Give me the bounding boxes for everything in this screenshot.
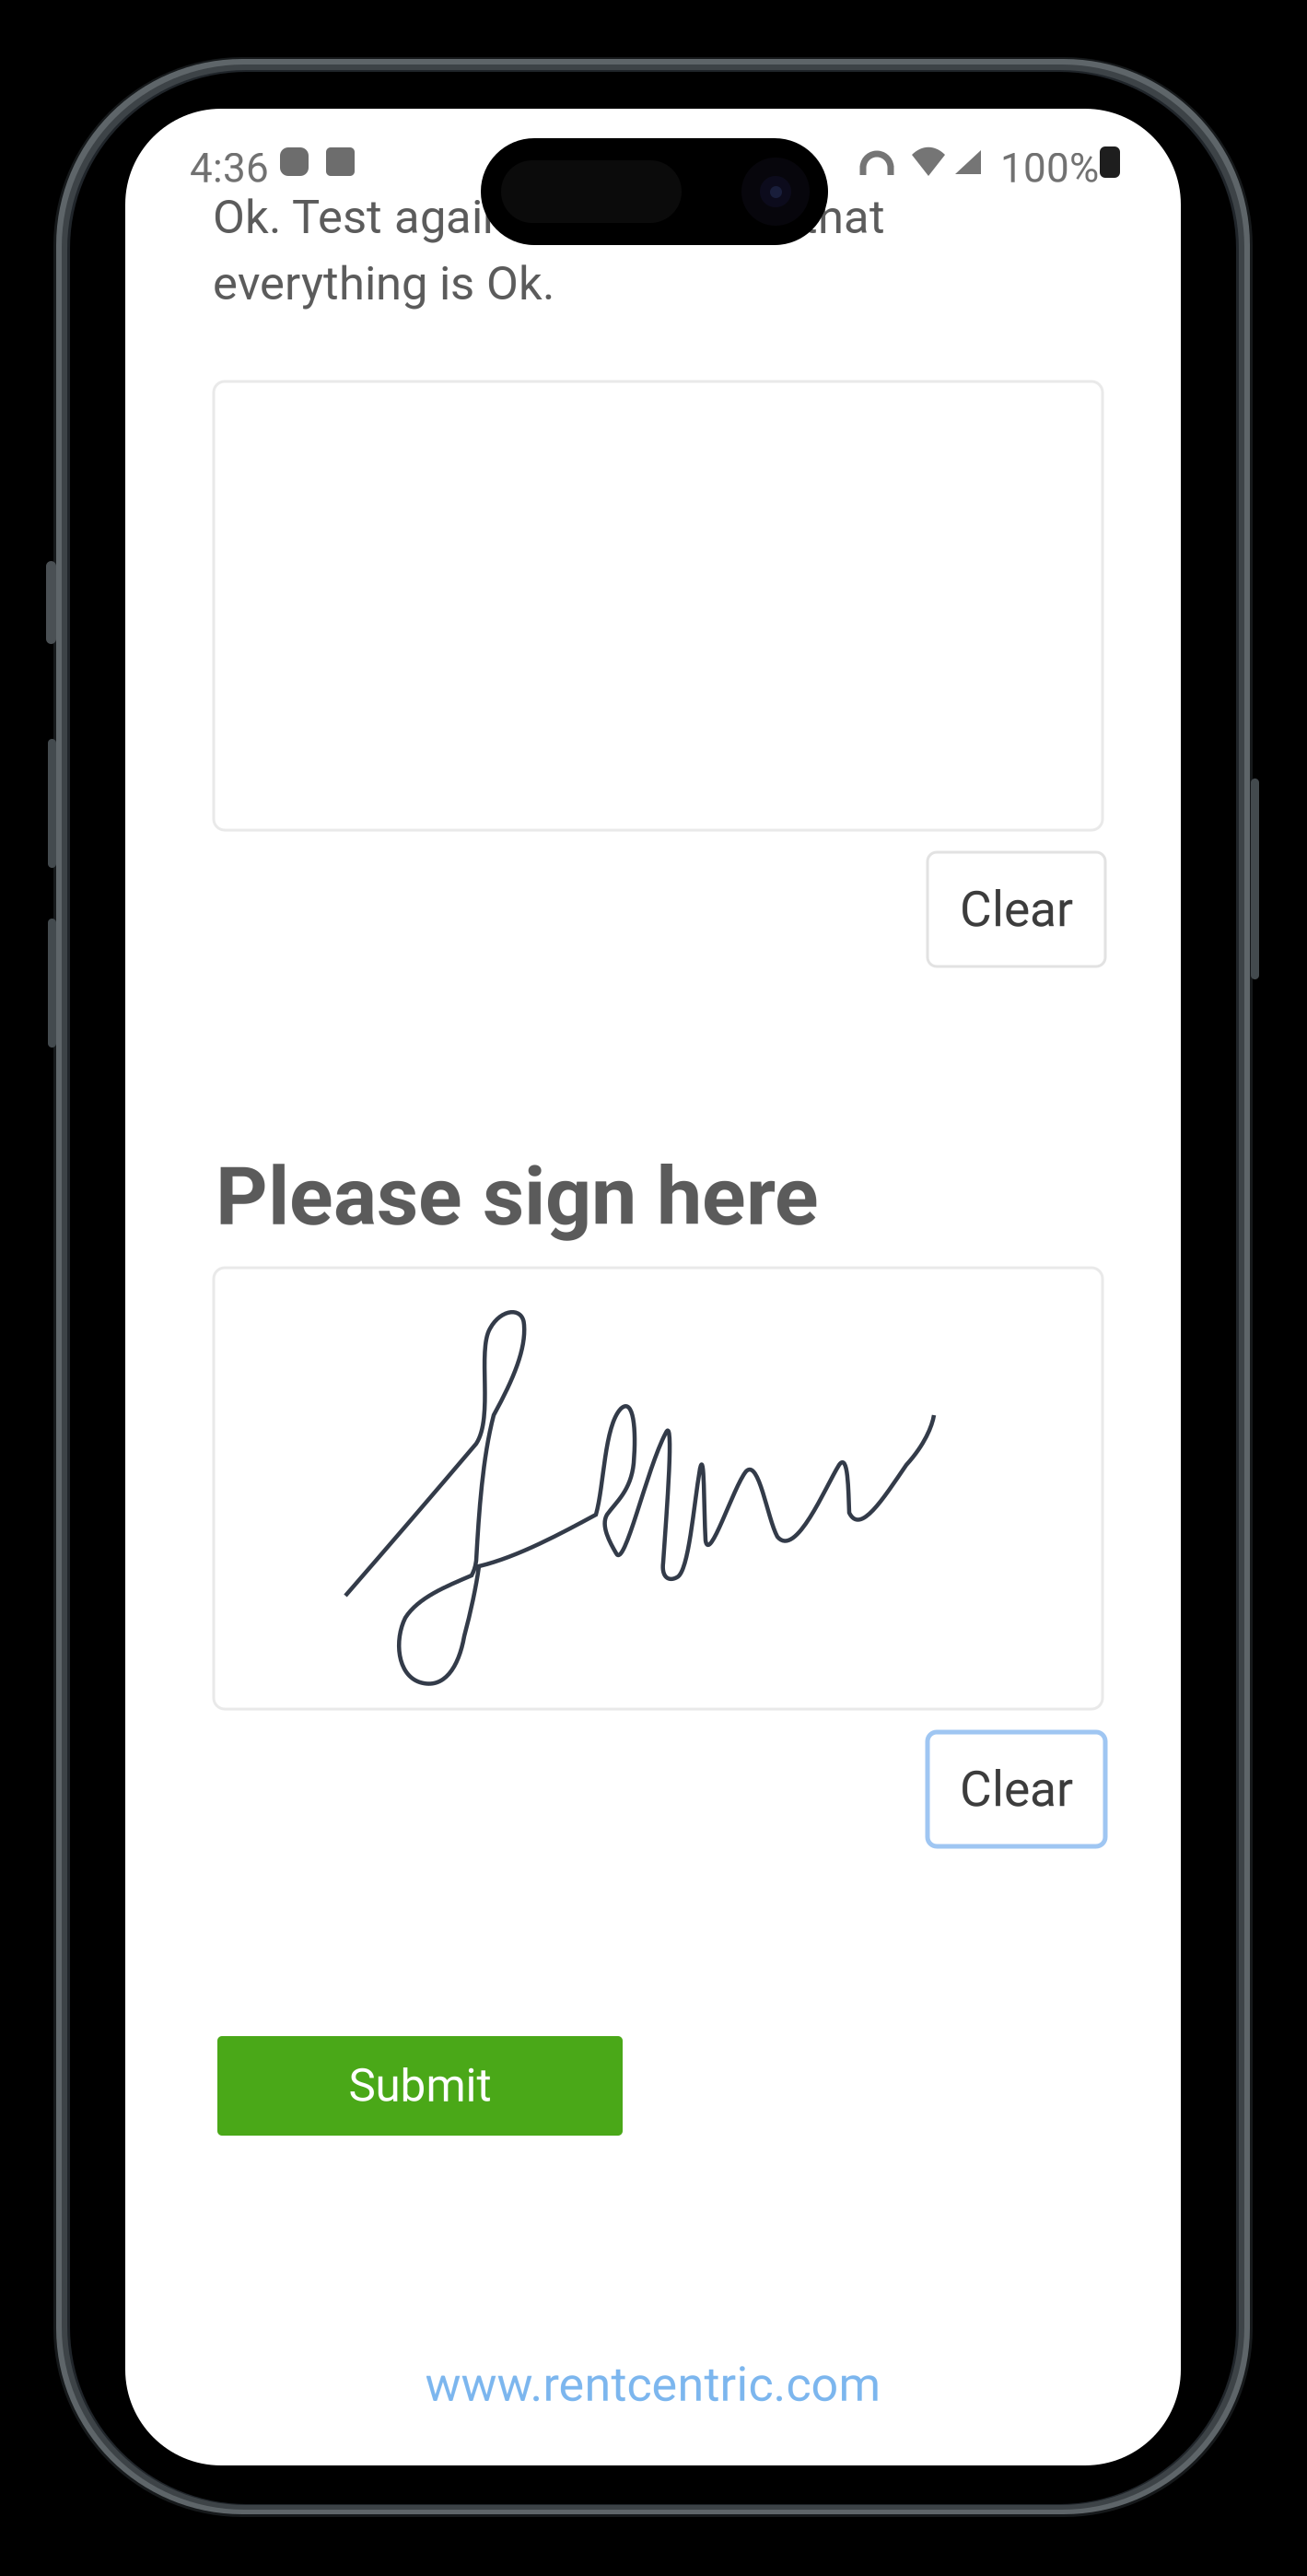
staticText: Clear (960, 1760, 1073, 1818)
button[interactable]: Submit (217, 2036, 623, 2136)
button[interactable]: Signature pad, signed (214, 1268, 1103, 1709)
button[interactable]: Clear (928, 852, 1105, 966)
staticText: Please sign here (216, 1149, 819, 1244)
button[interactable]: www.rentcentric.com (125, 2359, 1181, 2410)
staticText: 100% (1000, 145, 1099, 192)
staticText: Submit (349, 2059, 491, 2112)
staticText: Ok. Test again to make sure that (213, 190, 885, 245)
button[interactable]: Clear (928, 1732, 1105, 1846)
staticText: everything is Ok. (213, 256, 554, 311)
staticText: Clear (960, 881, 1073, 938)
staticText: 4:36 (190, 145, 269, 192)
staticText: www.rentcentric.com (425, 2356, 881, 2412)
